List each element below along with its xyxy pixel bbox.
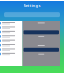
staticText: Settings [23,3,40,8]
